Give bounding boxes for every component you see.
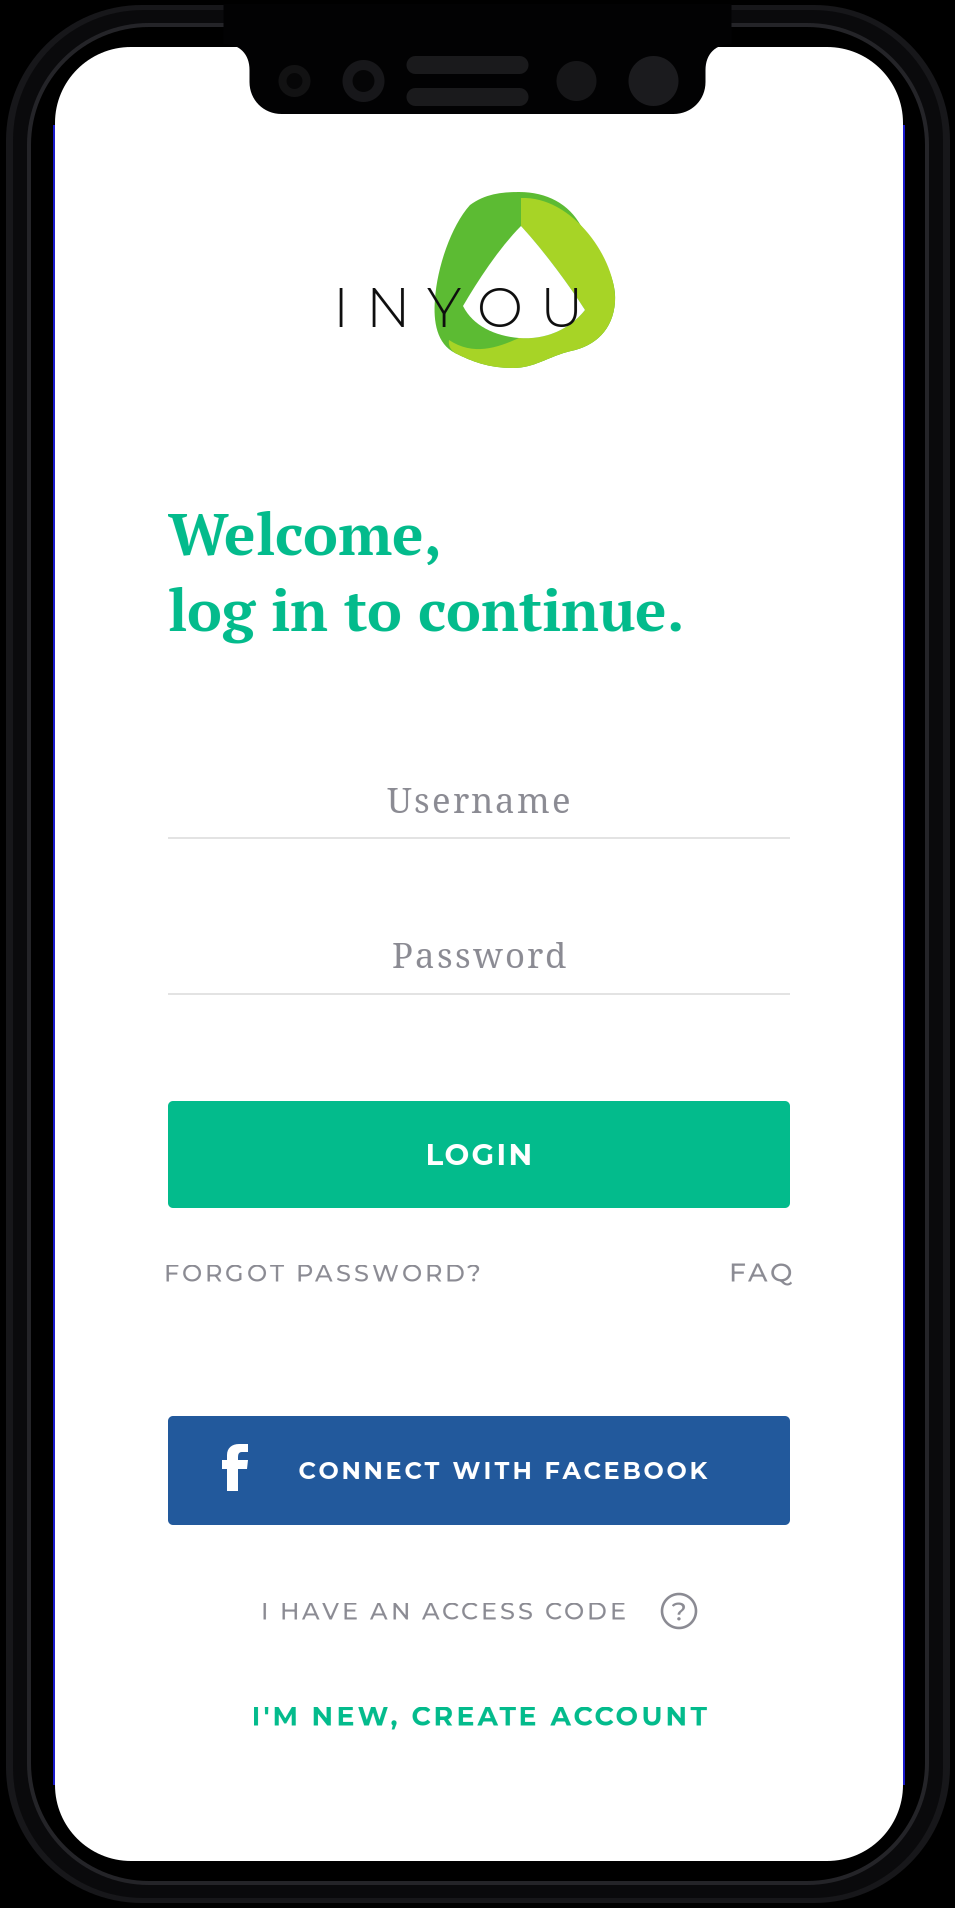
staticText: Password [392, 931, 566, 978]
staticText: FORGOT PASSWORD? [164, 1258, 481, 1288]
button[interactable]: I'M NEW, CREATE ACCOUNT [55, 1692, 903, 1740]
button[interactable]: CONNECT WITH FACEBOOK [168, 1416, 790, 1525]
staticText: log in to continue. [168, 570, 684, 648]
button[interactable]: FORGOT PASSWORD? [164, 1253, 504, 1293]
button[interactable]: LOGIN [168, 1101, 790, 1208]
button[interactable]: FAQ [672, 1252, 792, 1292]
staticText: I'M NEW, CREATE ACCOUNT [251, 1700, 706, 1732]
staticText: LOGIN [425, 1137, 532, 1172]
staticText: Username [387, 776, 571, 823]
staticText: Welcome, [168, 494, 442, 572]
staticText: INYOU [333, 274, 583, 341]
staticText: I HAVE AN ACCESS CODE [261, 1596, 626, 1626]
button[interactable]: I HAVE AN ACCESS CODE [55, 1587, 903, 1635]
staticText: FAQ [729, 1256, 792, 1288]
staticText: CONNECT WITH FACEBOOK [298, 1456, 707, 1485]
staticText: ? [671, 1595, 686, 1627]
